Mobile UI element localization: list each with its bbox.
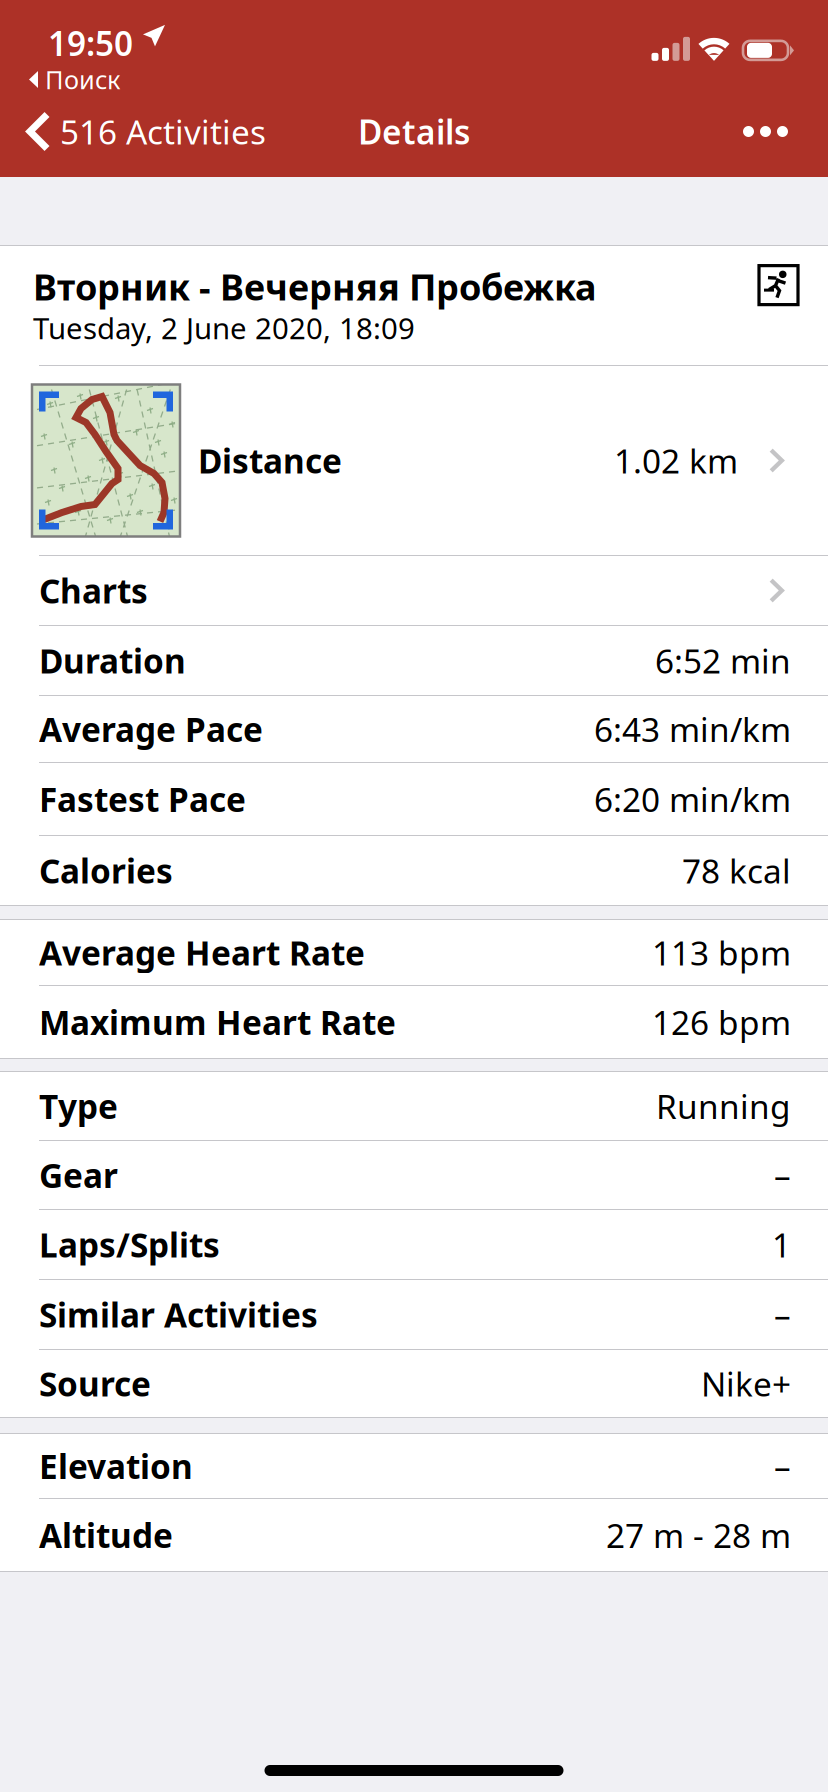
button[interactable]: Duration: [0, 626, 828, 695]
staticText: Вторник - Вечерняя Пробежка: [33, 263, 596, 310]
button[interactable]: Fastest Pace: [0, 763, 828, 835]
staticText: Running: [656, 1084, 791, 1128]
button[interactable]: Laps/Splits: [0, 1210, 828, 1279]
staticText: 6:52 min: [655, 638, 791, 683]
staticText: Altitude: [39, 1513, 173, 1557]
staticText: Fastest Pace: [39, 777, 246, 821]
staticText: 27 m - 28 m: [606, 1513, 791, 1557]
staticText: Tuesday, 2 June 2020, 18:09: [33, 308, 415, 347]
button[interactable]: Source: [0, 1350, 828, 1417]
staticText: 126 bpm: [652, 1000, 791, 1044]
button[interactable]: Elevation: [0, 1434, 828, 1498]
staticText: Laps/Splits: [39, 1222, 220, 1267]
staticText: Similar Activities: [39, 1292, 318, 1337]
staticText: 19:50: [48, 21, 133, 65]
staticText: 1.02 km: [614, 438, 738, 483]
staticText: Average Heart Rate: [39, 930, 365, 975]
staticText: Nike+: [701, 1361, 791, 1406]
staticText: –: [774, 1153, 791, 1197]
button[interactable]: Gear: [0, 1141, 828, 1209]
button[interactable]: Similar Activities: [0, 1280, 828, 1349]
button[interactable]: Average Pace: [0, 696, 828, 762]
button[interactable]: Calories: [0, 836, 828, 905]
button[interactable]: More options: [719, 96, 812, 176]
staticText: 6:20 min/km: [594, 777, 791, 821]
staticText: Duration: [39, 638, 186, 683]
staticText: Type: [39, 1084, 118, 1128]
staticText: Source: [39, 1361, 151, 1406]
staticText: Distance: [198, 438, 342, 483]
staticText: Gear: [39, 1153, 118, 1197]
staticText: Maximum Heart Rate: [39, 1000, 396, 1044]
staticText: 1: [772, 1222, 791, 1267]
staticText: Поиск: [45, 63, 120, 96]
staticText: Details: [358, 109, 470, 154]
staticText: Average Pace: [39, 707, 263, 751]
staticText: Calories: [39, 848, 173, 893]
button[interactable]: Maximum Heart Rate: [0, 986, 828, 1058]
staticText: 6:43 min/km: [594, 707, 791, 751]
button[interactable]: 516 Activities: [0, 96, 280, 176]
button[interactable]: Type: [0, 1072, 828, 1140]
staticText: 113 bpm: [652, 930, 791, 975]
staticText: –: [774, 1292, 791, 1337]
staticText: –: [774, 1444, 791, 1488]
staticText: Charts: [39, 568, 148, 613]
staticText: Elevation: [39, 1444, 193, 1488]
staticText: 78 kcal: [682, 848, 791, 893]
button[interactable]: Altitude: [0, 1499, 828, 1571]
button[interactable]: Distance: [0, 366, 828, 555]
staticText: 516 Activities: [60, 109, 266, 154]
button[interactable]: Charts: [0, 556, 828, 625]
button[interactable]: Average Heart Rate: [0, 920, 828, 985]
button[interactable]: Activity type: running: [759, 263, 798, 305]
button[interactable]: Back to Search: [0, 64, 828, 94]
